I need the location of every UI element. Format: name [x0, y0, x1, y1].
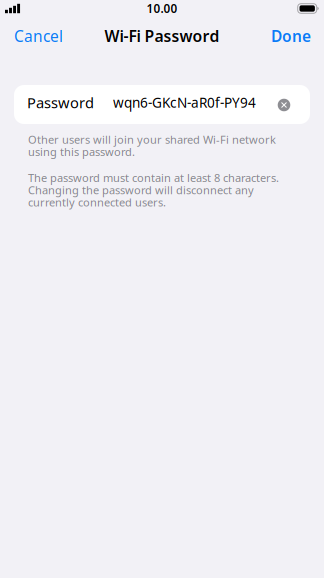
staticText: 10.00	[146, 0, 177, 16]
staticText: wqn6-GKcN-aR0f-PY94	[113, 93, 256, 112]
staticText: The password must contain at least 8 cha…	[28, 170, 279, 210]
staticText: Cancel	[14, 25, 63, 47]
button[interactable]: Password	[27, 85, 275, 124]
staticText: Password	[27, 92, 94, 112]
button[interactable]: Clear password	[273, 94, 295, 116]
button[interactable]: Cancel	[12, 20, 65, 52]
button[interactable]: Done	[269, 20, 313, 52]
staticText: Done	[271, 25, 311, 47]
staticText: Other users will join your shared Wi-Fi …	[28, 132, 276, 159]
staticText: Wi-Fi Password	[104, 25, 219, 47]
